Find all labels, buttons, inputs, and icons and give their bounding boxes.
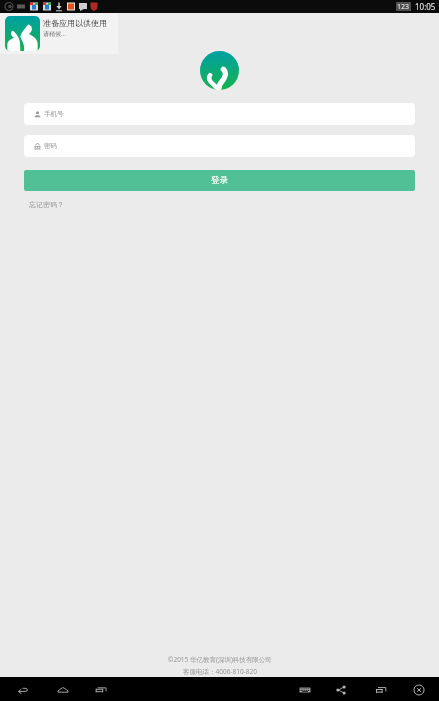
- button[interactable]: 准备应用以供使用: [0, 13, 118, 54]
- button[interactable]: Recent apps: [92, 681, 109, 698]
- button[interactable]: Home: [54, 681, 71, 698]
- staticText: 密码: [44, 142, 57, 150]
- button[interactable]: Close: [410, 681, 427, 698]
- button[interactable]: 密码: [24, 135, 415, 157]
- button[interactable]: Share: [332, 681, 349, 698]
- staticText: 123: [397, 2, 410, 11]
- button[interactable]: Keyboard: [296, 681, 313, 698]
- button[interactable]: Resize window: [372, 681, 389, 698]
- staticText: 客服电话：4006-810-820: [183, 667, 257, 676]
- button[interactable]: Back: [14, 681, 31, 698]
- staticText: 准备应用以供使用: [43, 18, 107, 28]
- staticText: 手机号: [44, 110, 64, 118]
- staticText: 10:05: [415, 1, 436, 12]
- button[interactable]: 忘记密码？: [29, 200, 64, 209]
- staticText: 请稍候...: [43, 30, 66, 38]
- staticText: 忘记密码？: [29, 200, 64, 209]
- button[interactable]: 手机号: [24, 103, 415, 125]
- button[interactable]: 登录: [24, 170, 415, 191]
- staticText: 登录: [211, 175, 228, 186]
- staticText: ©2015 华亿教育(深圳)科技有限公司: [168, 655, 272, 664]
